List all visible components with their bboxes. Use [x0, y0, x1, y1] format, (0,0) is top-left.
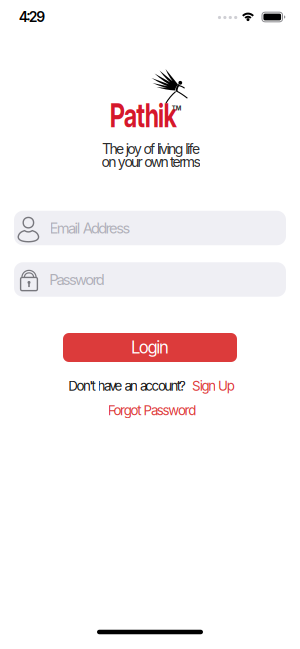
- staticText: own: [144, 153, 168, 170]
- staticText: Login: [131, 337, 169, 358]
- staticText: living: [157, 141, 184, 157]
- button[interactable]: Login: [63, 333, 237, 362]
- staticText: Sign: [192, 378, 216, 394]
- staticText: Don't: [68, 378, 95, 394]
- staticText: Password: [49, 271, 105, 288]
- staticText: life: [185, 141, 200, 157]
- staticText: The: [102, 141, 124, 157]
- staticText: 4:29: [19, 8, 45, 25]
- staticText: Email: [49, 219, 81, 237]
- staticText: Address: [83, 219, 130, 237]
- staticText: Forgot: [108, 402, 141, 418]
- staticText: on: [102, 153, 116, 170]
- button[interactable]: Email: [14, 211, 286, 245]
- button[interactable]: Sign: [192, 378, 235, 394]
- staticText: an: [125, 378, 138, 394]
- staticText: account?: [140, 378, 186, 394]
- staticText: joy: [126, 141, 142, 157]
- staticText: Pathik: [95, 94, 191, 135]
- staticText: your: [118, 153, 143, 170]
- staticText: Up: [218, 378, 235, 394]
- button[interactable]: Forgot: [102, 399, 202, 421]
- staticText: of: [143, 141, 155, 157]
- staticText: terms: [170, 153, 200, 170]
- button[interactable]: Password: [14, 262, 286, 297]
- staticText: Password: [143, 402, 196, 418]
- staticText: have: [98, 378, 122, 394]
- staticText: TM: [172, 105, 182, 112]
